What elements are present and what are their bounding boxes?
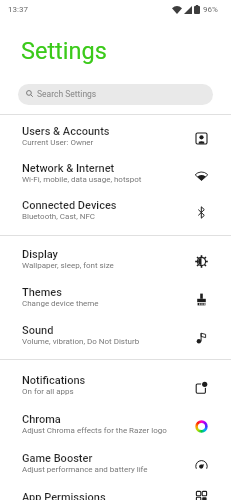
staticText: Settings	[21, 37, 107, 65]
button[interactable]: Connected Devices	[0, 189, 231, 226]
button[interactable]: Users & Accounts	[0, 115, 231, 152]
staticText: Users & Accounts	[22, 125, 110, 138]
staticText: 13:37	[8, 5, 28, 14]
staticText: Network & Internet	[22, 162, 115, 175]
button[interactable]: Chroma	[0, 403, 231, 442]
staticText: On for all apps	[22, 387, 74, 396]
staticText: Adjust Chroma effects for the Razer logo	[22, 426, 167, 435]
staticText: Game Booster	[22, 452, 93, 465]
staticText: Search Settings	[37, 89, 97, 99]
staticText: Current User: Owner	[22, 138, 94, 147]
button[interactable]: Display	[0, 238, 231, 276]
staticText: Themes	[22, 286, 62, 299]
staticText: Wi-Fi, mobile, data usage, hotspot	[22, 175, 142, 184]
staticText: Volume, vibration, Do Not Disturb	[22, 337, 140, 346]
staticText: Wallpaper, sleep, font size	[22, 261, 114, 270]
staticText: Display	[22, 248, 58, 261]
staticText: Connected Devices	[22, 199, 117, 212]
button[interactable]: Network & Internet	[0, 152, 231, 189]
staticText: 96%	[203, 5, 218, 14]
button[interactable]: Search Settings	[18, 84, 213, 105]
staticText: Notifications	[22, 374, 86, 387]
staticText: Sound	[22, 324, 54, 337]
button[interactable]: Notifications	[0, 364, 231, 403]
staticText: Adjust performance and battery life	[22, 465, 148, 474]
button[interactable]: Themes	[0, 276, 231, 314]
button[interactable]: App Permissions	[0, 481, 231, 500]
button[interactable]: Sound	[0, 314, 231, 352]
staticText: Chroma	[22, 413, 61, 426]
button[interactable]: Game Booster	[0, 442, 231, 481]
staticText: Change device theme	[22, 299, 99, 308]
staticText: Bluetooth, Cast, NFC	[22, 212, 96, 221]
staticText: App Permissions	[22, 491, 106, 500]
